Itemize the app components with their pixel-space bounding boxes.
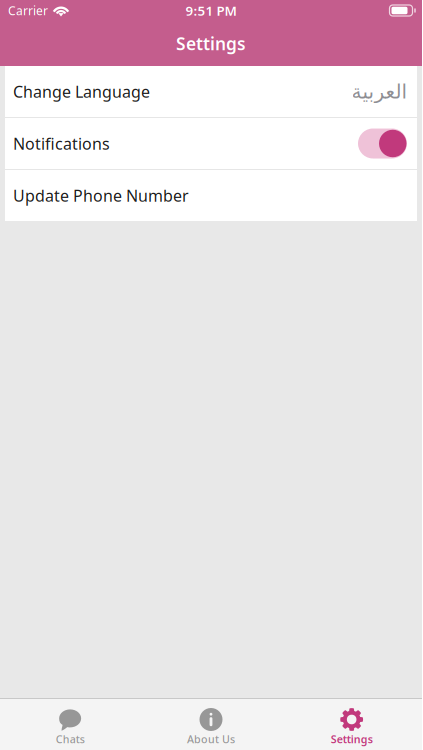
staticText: Carrier	[8, 2, 48, 18]
button[interactable]: Update Phone Number	[5, 170, 417, 221]
button[interactable]: Chats	[0, 699, 141, 750]
button[interactable]: Notifications	[358, 128, 407, 158]
button[interactable]: Settings	[281, 699, 422, 750]
staticText: 9:51 PM	[185, 2, 236, 19]
button[interactable]: Change Language	[5, 66, 417, 117]
staticText: Chats	[56, 732, 85, 746]
staticText: Change Language	[13, 81, 150, 102]
staticText: العربية	[351, 80, 407, 103]
button[interactable]: About Us	[141, 699, 281, 750]
button[interactable]: Notifications	[5, 118, 417, 169]
staticText: Settings	[176, 32, 246, 55]
staticText: Notifications	[13, 133, 110, 154]
staticText: About Us	[187, 732, 235, 746]
staticText: Settings	[331, 732, 373, 746]
staticText: Update Phone Number	[13, 185, 189, 206]
